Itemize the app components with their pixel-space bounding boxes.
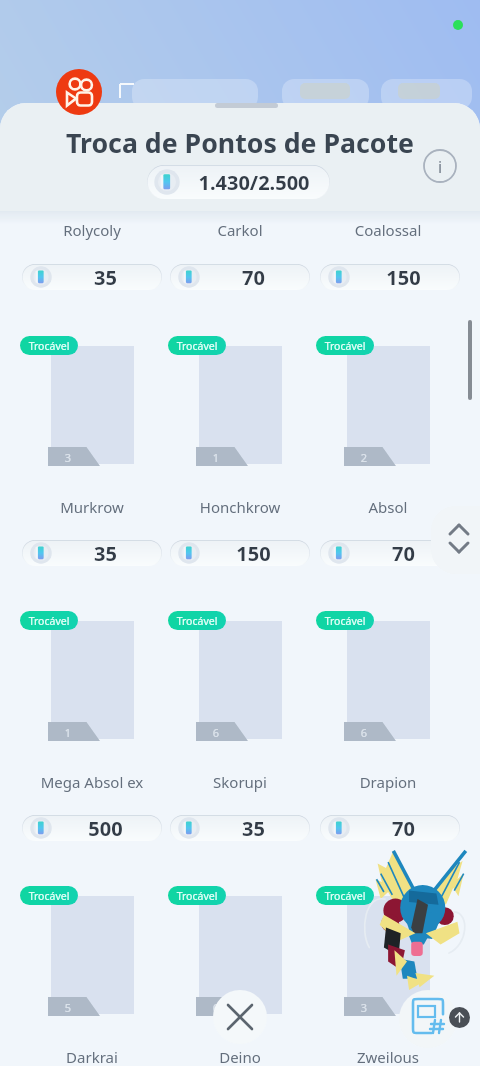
staticText: Trocável [168,614,226,628]
staticText: Darkrai [20,1047,164,1066]
staticText: 70 [392,815,415,841]
button[interactable]: Trocável [168,336,226,355]
staticText: Coalossal [318,220,458,240]
staticText: 6 [338,725,390,740]
button[interactable]: Trocável [168,886,226,905]
staticText: 2 [338,450,390,465]
staticText: 35 [94,540,117,566]
staticText: 35 [94,264,117,290]
staticText: 1 [42,725,94,740]
button[interactable]: Trocável [316,886,374,905]
staticText: Trocável [168,889,226,903]
staticText: 5 [42,1000,94,1015]
button[interactable]: 150 [320,264,460,290]
button[interactable]: Trocável [20,611,78,630]
button[interactable]: 35 [22,264,162,290]
button[interactable]: Gravar [56,69,102,115]
button[interactable]: Rolar [431,506,480,574]
staticText: Absol [316,497,460,517]
staticText: Skorupi [168,772,312,792]
button[interactable]: Trocável [316,611,374,630]
staticText: 70 [392,540,415,566]
button[interactable]: Informações [418,144,462,188]
staticText: Trocável [316,339,374,353]
button[interactable]: 500 [22,815,162,841]
button[interactable]: Trocável [20,336,78,355]
staticText: 3 [42,450,94,465]
staticText: 6 [190,1000,242,1015]
button[interactable]: Fechar [213,990,267,1044]
staticText: Zweilous [316,1047,460,1066]
staticText: Trocável [20,889,78,903]
button[interactable]: 70 [170,264,310,290]
staticText: 35 [242,815,265,841]
staticText: i [418,156,462,178]
button[interactable]: Capturar tela [399,990,457,1048]
button[interactable]: 70 [320,815,460,841]
staticText: 150 [236,540,271,566]
button[interactable]: 1.430/2.500 [147,165,330,199]
button[interactable]: Expandir [449,1007,470,1028]
staticText: 3 [338,1000,390,1015]
staticText: 70 [242,264,265,290]
button[interactable]: Trocável [20,886,78,905]
button[interactable]: 150 [170,540,310,566]
staticText: 1 [190,450,242,465]
staticText: Drapion [316,772,460,792]
staticText: Trocável [20,339,78,353]
staticText: Deino [168,1047,312,1066]
button[interactable]: 35 [22,540,162,566]
staticText: Trocável [316,889,374,903]
button[interactable]: 70 [320,540,460,566]
staticText: Trocável [20,614,78,628]
staticText: Mega Absol ex [20,772,164,792]
button[interactable]: 35 [170,815,310,841]
staticText: Carkol [170,220,310,240]
staticText: Trocável [168,339,226,353]
staticText: Troca de Pontos de Pacote [0,124,480,160]
button[interactable]: Trocável [316,336,374,355]
staticText: Honchkrow [168,497,312,517]
staticText: Murkrow [20,497,164,517]
staticText: 1.430/2.500 [198,169,310,196]
staticText: 150 [386,264,421,290]
staticText: 6 [190,725,242,740]
staticText: Rolycoly [22,220,162,240]
staticText: Trocável [316,614,374,628]
staticText: 500 [88,815,123,841]
button[interactable]: Trocável [168,611,226,630]
